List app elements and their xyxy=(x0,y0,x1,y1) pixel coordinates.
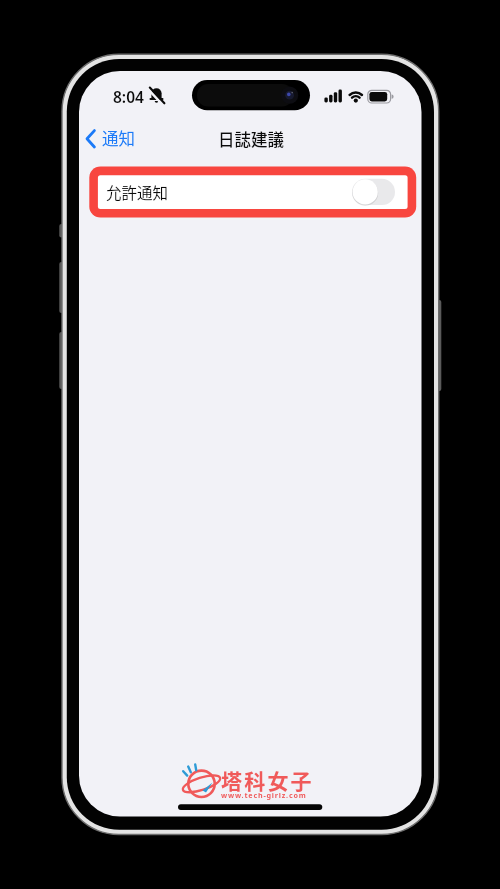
button[interactable]: 允許通知 xyxy=(98,175,408,209)
button[interactable] xyxy=(352,178,395,205)
staticText: www.tech-girlz.com xyxy=(221,790,307,800)
staticText: 通知 xyxy=(102,126,135,150)
staticText: 允許通知 xyxy=(106,181,169,203)
button[interactable]: 通知 xyxy=(84,124,135,152)
staticText: 日誌建議 xyxy=(218,127,284,151)
staticText: 8:04 xyxy=(113,86,144,107)
staticText: 塔科女子 xyxy=(221,765,314,795)
